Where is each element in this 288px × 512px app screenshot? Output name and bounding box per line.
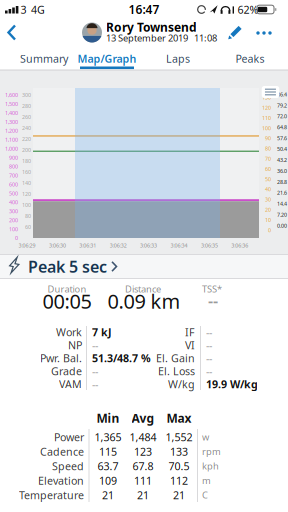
staticText: 120 <box>262 104 271 111</box>
staticText: 3:06:34 <box>170 242 187 249</box>
staticText: 62% <box>237 2 258 17</box>
staticText: -- <box>208 290 218 312</box>
staticText: Power <box>54 430 84 444</box>
staticText: Avg <box>131 410 154 426</box>
staticText: 800 <box>9 163 18 170</box>
staticText: -- <box>206 351 212 365</box>
staticText: 21.6 <box>277 189 287 196</box>
staticText: 7.20 <box>277 211 287 218</box>
staticText: 30 <box>265 196 271 203</box>
staticText: 109 <box>99 473 117 488</box>
staticText: 200 <box>22 146 31 154</box>
staticText: Distance <box>125 283 161 295</box>
staticText: 1,484 <box>129 430 156 444</box>
staticText: 260 <box>22 113 31 121</box>
staticText: 1,200 <box>5 127 18 134</box>
staticText: 63.7 <box>97 459 118 473</box>
staticText: 3:06:33 <box>140 242 157 249</box>
staticText: 7 kJ <box>92 325 112 339</box>
staticText: NP <box>68 338 82 352</box>
staticText: Grade <box>51 364 82 378</box>
staticText: 67.8 <box>132 459 153 473</box>
button[interactable]: More <box>254 26 274 40</box>
staticText: 160 <box>22 168 31 176</box>
staticText: TSS* <box>202 283 222 295</box>
staticText: 0 <box>268 227 271 234</box>
staticText: 3 <box>20 2 26 17</box>
staticText: 14.4 <box>277 200 287 207</box>
staticText: Temperature <box>19 488 84 502</box>
staticText: 180 <box>22 157 31 165</box>
button[interactable]: Peaks <box>217 47 283 69</box>
staticText: 00:05 <box>42 288 91 314</box>
staticText: 10 <box>265 216 271 223</box>
staticText: W/kg <box>168 377 195 391</box>
staticText: Speed <box>52 459 84 473</box>
staticText: Max <box>166 410 191 426</box>
staticText: 21 <box>102 488 114 502</box>
staticText: -- <box>92 364 98 378</box>
staticText: 1,400 <box>5 109 18 116</box>
staticText: 100 <box>22 201 31 209</box>
staticText: C <box>202 489 208 501</box>
staticText: 123 <box>134 444 152 459</box>
staticText: 1,100 <box>5 136 18 143</box>
staticText: 120 <box>22 190 31 198</box>
staticText: 50 <box>265 176 271 183</box>
button[interactable]: Summary <box>11 47 77 69</box>
staticText: 72.0 <box>277 113 287 120</box>
staticText: 51.3/48.7 % <box>92 351 151 365</box>
staticText: 21 <box>137 488 149 502</box>
button[interactable]: Graph options <box>262 86 279 98</box>
staticText: 0 <box>15 234 18 242</box>
button[interactable]: Laps <box>145 47 211 69</box>
staticText: 200 <box>9 217 18 224</box>
staticText: El. Loss <box>158 364 195 378</box>
staticText: 28.8 <box>277 178 287 185</box>
staticText: VAM <box>59 377 82 391</box>
staticText: -- <box>206 325 212 339</box>
staticText: 21 <box>173 488 185 502</box>
staticText: 13 September 2019 11:08 <box>106 32 217 44</box>
staticText: 60 <box>265 165 271 172</box>
staticText: 86.4 <box>277 91 287 98</box>
staticText: -- <box>206 364 212 378</box>
button[interactable]: Back <box>6 19 26 46</box>
staticText: -- <box>92 338 98 352</box>
staticText: 133 <box>170 444 188 459</box>
staticText: Peaks <box>235 51 264 66</box>
staticText: 500 <box>9 190 18 197</box>
staticText: 700 <box>9 172 18 179</box>
button[interactable]: Edit <box>226 21 246 41</box>
staticText: 400 <box>9 199 18 206</box>
staticText: 40 <box>265 186 271 193</box>
staticText: 140 <box>22 179 31 187</box>
staticText: 80 <box>265 145 271 152</box>
staticText: 100 <box>262 125 271 132</box>
staticText: 900 <box>9 154 18 161</box>
staticText: Duration <box>47 283 86 295</box>
button[interactable]: Map/Graph <box>65 47 149 69</box>
staticText: Pwr. Bal. <box>40 351 82 365</box>
staticText: 19.9 W/kg <box>206 377 258 391</box>
staticText: 300 <box>9 208 18 215</box>
staticText: 3:06:31 <box>79 242 96 249</box>
staticText: 240 <box>22 124 31 132</box>
staticText: 50.4 <box>277 145 287 153</box>
staticText: m <box>202 474 211 487</box>
staticText: 1,365 <box>94 430 121 444</box>
staticText: Rory Townsend <box>106 19 197 35</box>
staticText: 3:06:29 <box>18 242 35 249</box>
staticText: Elevation <box>38 473 84 488</box>
staticText: Map/Graph <box>77 51 136 66</box>
staticText: 115 <box>99 444 117 459</box>
staticText: 64.8 <box>277 124 287 131</box>
staticText: w <box>202 431 209 443</box>
staticText: 1,552 <box>165 430 192 444</box>
staticText: 3:06:35 <box>201 242 218 249</box>
button[interactable]: Peak 5 sec <box>0 254 288 279</box>
staticText: VI <box>185 338 195 352</box>
staticText: -- <box>206 338 212 352</box>
staticText: kph <box>202 460 219 472</box>
staticText: 1,600 <box>5 91 18 99</box>
